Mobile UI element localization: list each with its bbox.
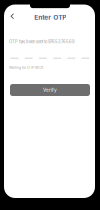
button[interactable]: Verify — [10, 84, 90, 96]
staticText: Verify — [43, 87, 57, 93]
staticText: OTP has been sent to 9765376569 — [9, 39, 75, 44]
button[interactable]: Back — [7, 11, 18, 22]
staticText: Waiting for OTP 00:31 — [9, 65, 43, 69]
staticText: Enter OTP — [34, 13, 66, 21]
